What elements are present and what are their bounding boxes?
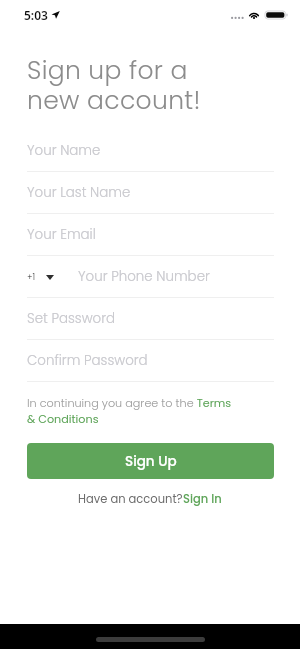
button[interactable]: +1 bbox=[27, 256, 274, 298]
other: Battery bbox=[265, 11, 288, 19]
button[interactable]: In continuing you agree to the Terms & C… bbox=[27, 395, 274, 427]
button[interactable]: Confirm Password bbox=[27, 340, 274, 382]
staticText: Set Password bbox=[27, 309, 116, 328]
staticText: Your Last Name bbox=[27, 183, 131, 202]
staticText: Confirm Password bbox=[27, 351, 148, 370]
staticText: 5:03 bbox=[24, 7, 48, 23]
staticText: Have an account? bbox=[78, 491, 183, 507]
button[interactable]: Set Password bbox=[27, 298, 274, 340]
staticText: Sign up for a new account! bbox=[27, 53, 201, 118]
button[interactable]: Sign Up bbox=[27, 443, 274, 479]
staticText: Sign Up bbox=[125, 452, 177, 471]
button[interactable]: Your Email bbox=[27, 214, 274, 256]
staticText: Your Phone Number bbox=[78, 267, 210, 286]
staticText: Your Name bbox=[27, 141, 101, 160]
other: Cellular signal bbox=[231, 11, 244, 19]
staticText: +1 bbox=[27, 272, 36, 283]
staticText: Your Email bbox=[27, 225, 96, 244]
other: Wi-Fi bbox=[248, 11, 260, 19]
button[interactable]: Your Last Name bbox=[27, 172, 274, 214]
button[interactable]: Your Name bbox=[27, 130, 274, 172]
button[interactable]: Have an account? bbox=[78, 491, 222, 507]
staticText: Sign In bbox=[183, 491, 222, 507]
